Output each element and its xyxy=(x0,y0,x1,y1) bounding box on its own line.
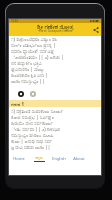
button[interactable]: ಕನ್ನಡ xyxy=(29,156,49,165)
button[interactable]: Share xyxy=(90,24,101,35)
staticText: ಶ್ರೀ ಗಣೇಶ ಸ್ತೋತ್ರ xyxy=(37,23,74,31)
button[interactable]: Stop xyxy=(28,89,37,98)
button[interactable]: About xyxy=(69,156,89,165)
button[interactable]: English xyxy=(49,156,69,165)
staticText: 10:24 xyxy=(11,19,18,23)
staticText: ಗಣೇಶ 1 xyxy=(11,101,24,107)
button[interactable]: Home xyxy=(9,156,29,165)
staticText: English xyxy=(52,156,66,161)
staticText: Shree Ganapathi Stotra xyxy=(39,29,72,33)
staticText: ಕನ್ನಡ xyxy=(35,156,43,160)
staticText: About xyxy=(73,156,85,161)
staticText: ೧) ಶುಕ್ಲಾಂಬರಧರಂ ವಿಷ್ಣುಂ ಶಶಿ ವರ್ಣಂ ಚತುರ್ಭ… xyxy=(11,36,101,84)
staticText: ೧) ವಕ್ರತುಂಡ ಮಹಾಕಾಯ ಸೂರ್ಯ ಕೋಟಿ ಸಮಪ್ರಭ | ನ… xyxy=(11,108,101,150)
button[interactable]: Play xyxy=(16,89,25,98)
staticText: Home xyxy=(13,156,25,161)
